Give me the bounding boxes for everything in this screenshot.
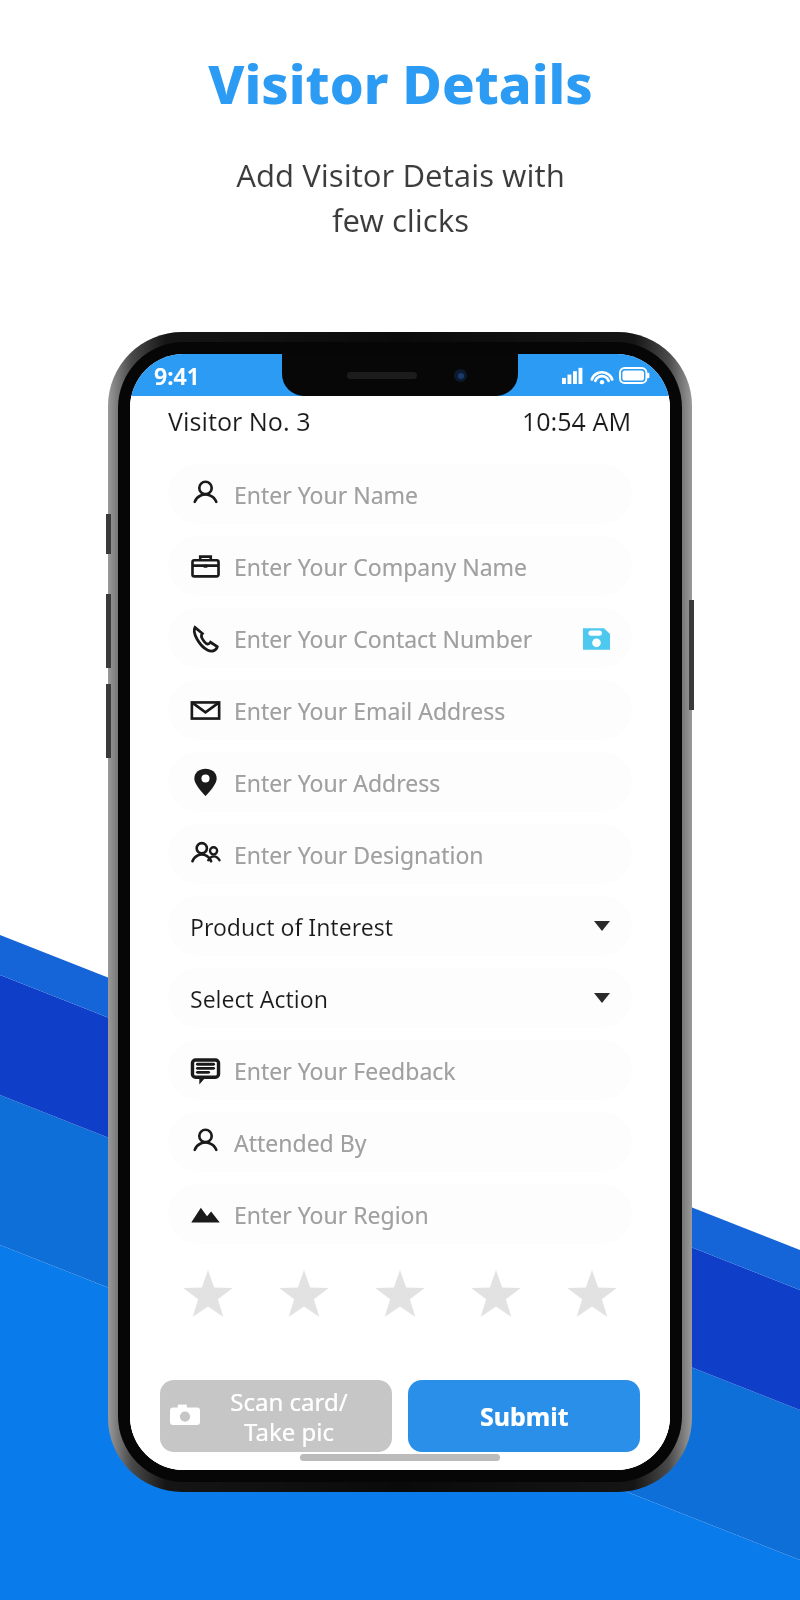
staticText: 9:41 xyxy=(154,360,200,391)
button[interactable]: Rate star xyxy=(278,1270,330,1322)
staticText: Enter Your Feedback xyxy=(234,1055,610,1086)
button[interactable]: Rate star xyxy=(470,1270,522,1322)
button[interactable]: Scan card/ Take pic xyxy=(160,1380,392,1452)
button[interactable]: Enter Your Company Name xyxy=(168,536,632,596)
button[interactable]: Enter Your Region xyxy=(168,1184,632,1244)
button[interactable]: Product of Interest xyxy=(168,896,632,956)
button[interactable]: Submit xyxy=(408,1380,640,1452)
staticText: Enter Your Address xyxy=(234,767,610,798)
staticText: Enter Your Region xyxy=(234,1199,610,1230)
button[interactable]: Rate star xyxy=(182,1270,234,1322)
staticText: Product of Interest xyxy=(190,911,594,942)
staticText: Enter Your Designation xyxy=(234,839,610,870)
button[interactable]: Enter Your Email Address xyxy=(168,680,632,740)
button[interactable]: Enter Your Designation xyxy=(168,824,632,884)
staticText: Add Visitor Detais with few clicks xyxy=(236,154,565,241)
button[interactable]: Enter Your Contact Number xyxy=(168,608,632,668)
button[interactable]: Enter Your Name xyxy=(168,464,632,524)
staticText: Enter Your Name xyxy=(234,479,610,510)
staticText: Select Action xyxy=(190,983,594,1014)
button[interactable]: Attended By xyxy=(168,1112,632,1172)
staticText: Visitor No. 3 xyxy=(168,404,311,438)
staticText: Enter Your Email Address xyxy=(234,695,610,726)
staticText: Scan card/ Take pic xyxy=(230,1385,348,1448)
staticText: 10:54 AM xyxy=(522,404,632,438)
button[interactable]: Select Action xyxy=(168,968,632,1028)
staticText: Submit xyxy=(480,1399,569,1433)
staticText: Visitor Details xyxy=(208,46,593,120)
button[interactable]: Rate star xyxy=(374,1270,426,1322)
staticText: Enter Your Contact Number xyxy=(234,623,583,654)
button[interactable]: Enter Your Feedback xyxy=(168,1040,632,1100)
staticText: Attended By xyxy=(234,1127,610,1158)
button[interactable]: Enter Your Address xyxy=(168,752,632,812)
staticText: Enter Your Company Name xyxy=(234,551,610,582)
button[interactable]: Rate star xyxy=(566,1270,618,1322)
